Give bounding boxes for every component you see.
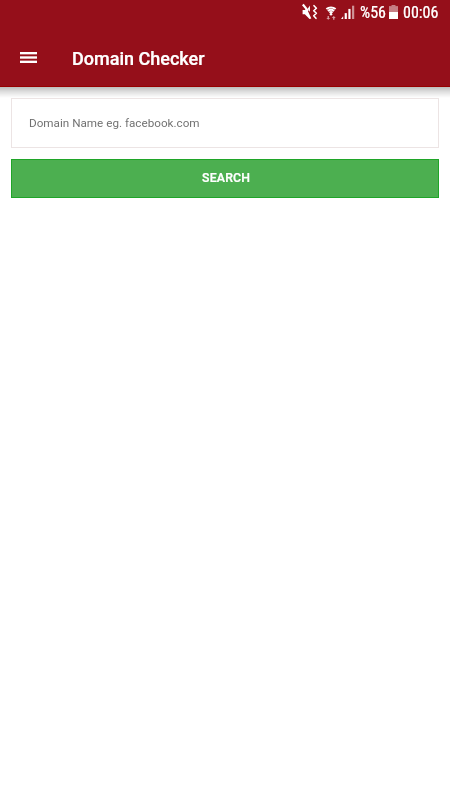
staticText: Domain Name eg. facebook.com	[29, 116, 200, 130]
button[interactable]: Open navigation drawer	[7, 36, 49, 78]
button[interactable]: Domain Name eg. facebook.com	[11, 98, 439, 148]
staticText: %56	[360, 3, 386, 22]
staticText: 00:06	[403, 3, 439, 22]
staticText: SEARCH	[202, 171, 251, 185]
button[interactable]: SEARCH	[11, 159, 439, 198]
staticText: Domain Checker	[72, 48, 205, 69]
